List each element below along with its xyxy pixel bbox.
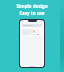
button[interactable]: Header bar <box>20 20 44 67</box>
button[interactable]: List row <box>22 33 42 34</box>
button[interactable]: List row <box>22 34 42 35</box>
button[interactable]: List row <box>22 32 42 33</box>
staticText: Simple design <box>0 3 64 9</box>
button[interactable]: Header bar <box>22 24 42 27</box>
button[interactable]: List row <box>22 29 42 30</box>
staticText: Easy to use <box>0 10 64 16</box>
button[interactable]: List row <box>22 31 42 32</box>
button[interactable]: List row <box>22 30 42 31</box>
